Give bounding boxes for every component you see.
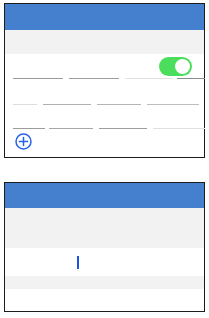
button[interactable]: Add — [13, 131, 34, 152]
button[interactable]: Toggle on — [159, 57, 192, 76]
button[interactable] — [5, 248, 204, 276]
